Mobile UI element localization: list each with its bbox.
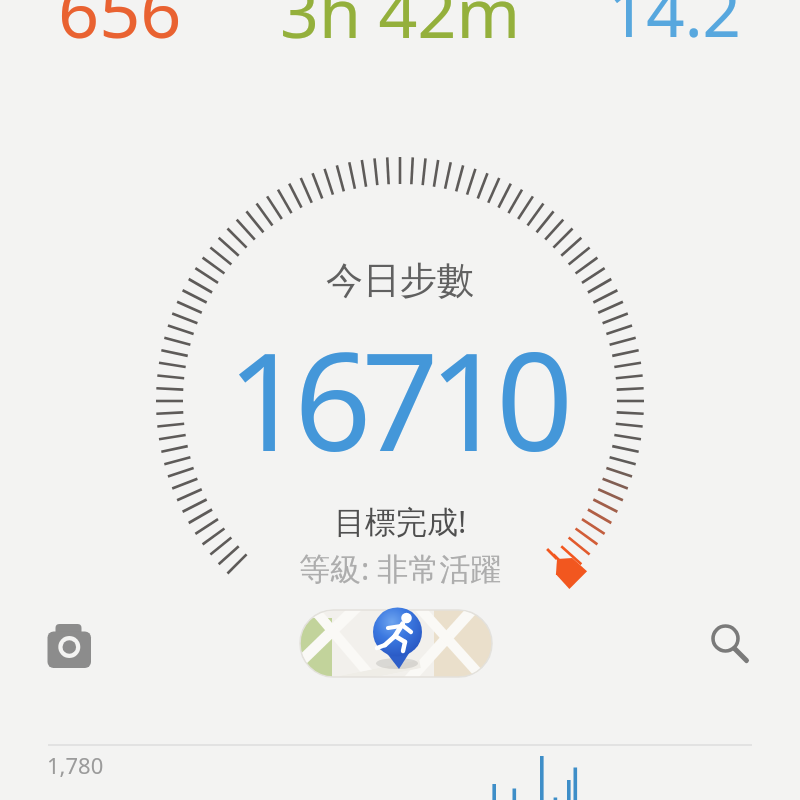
staticText: 今日步數 <box>326 257 474 304</box>
button[interactable] <box>300 610 492 677</box>
staticText: 3h 42m <box>280 0 520 58</box>
staticText: 656 <box>58 0 182 59</box>
staticText: 1,780 <box>47 750 104 780</box>
button[interactable] <box>40 616 100 676</box>
staticText: 目標完成! <box>334 500 467 542</box>
staticText: 14.2 <box>608 0 741 56</box>
staticText: 等級: 非常活躍 <box>299 547 502 589</box>
button[interactable] <box>700 612 760 672</box>
staticText: 16710 <box>227 307 564 491</box>
